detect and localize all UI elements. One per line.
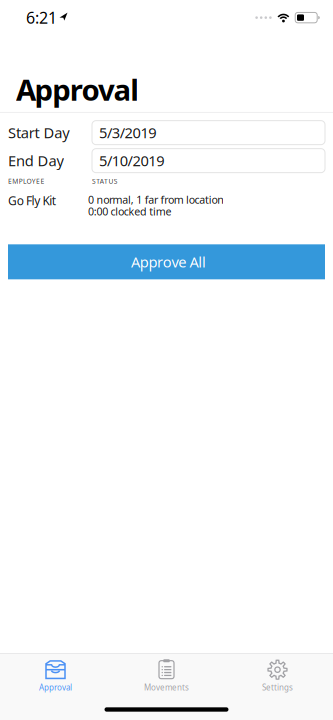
staticText: 6:21 (26, 7, 57, 28)
button[interactable]: Approve All (8, 244, 325, 279)
button[interactable]: Approval (0, 656, 111, 697)
staticText: EMPLOYEE (8, 177, 44, 186)
staticText: Approve All (131, 252, 206, 272)
staticText: Start Day (8, 123, 69, 142)
staticText: STATUS (92, 177, 118, 186)
staticText: Approval (39, 682, 72, 693)
staticText: End Day (8, 151, 63, 170)
staticText: Approval (16, 70, 139, 109)
staticText: 5/3/2019 (99, 123, 156, 142)
staticText: 5/10/2019 (99, 151, 164, 170)
staticText: Settings (262, 682, 293, 693)
staticText: Movements (144, 682, 189, 693)
button[interactable]: 5/3/2019 (92, 121, 325, 145)
button[interactable]: Settings (222, 656, 333, 697)
button[interactable]: 5/10/2019 (92, 149, 325, 173)
staticText: 0:00 clocked time (88, 204, 171, 218)
button[interactable]: Movements (111, 656, 222, 697)
staticText: Go Fly Kit (8, 192, 56, 208)
staticText: 0 normal, 1 far from location (88, 192, 224, 207)
